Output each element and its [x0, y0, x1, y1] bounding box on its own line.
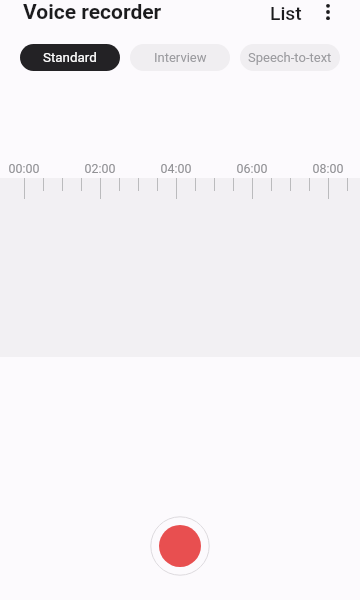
- staticText: Interview: [154, 50, 207, 65]
- staticText: 04:00: [154, 161, 198, 176]
- button[interactable]: List: [264, 0, 308, 26]
- staticText: 00:00: [2, 161, 46, 176]
- button[interactable]: Speech-to-text: [240, 44, 340, 71]
- staticText: List: [270, 2, 302, 25]
- button[interactable]: Interview: [130, 44, 230, 71]
- staticText: Speech-to-text: [248, 50, 332, 65]
- button[interactable]: Standard: [20, 44, 120, 71]
- button[interactable]: Record: [149, 515, 211, 577]
- staticText: Standard: [43, 50, 97, 66]
- staticText: 06:00: [230, 161, 274, 176]
- staticText: 08:00: [306, 161, 350, 176]
- staticText: 02:00: [78, 161, 122, 176]
- button[interactable]: More options: [313, 0, 343, 27]
- staticText: Voice recorder: [23, 0, 162, 25]
